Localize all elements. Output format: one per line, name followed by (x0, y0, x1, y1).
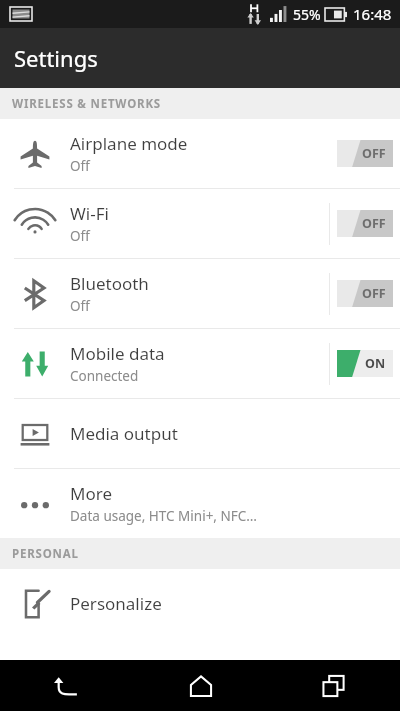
staticText: Personalize (70, 592, 162, 615)
staticText: WIRELESS & NETWORKS (12, 96, 161, 112)
button[interactable]: Back (0, 660, 134, 711)
button[interactable]: Home (134, 660, 267, 711)
staticText: 16:48 (353, 4, 392, 24)
button[interactable]: Bluetooth toggle (330, 259, 400, 328)
staticText: Media output (70, 422, 178, 445)
staticText: OFF (362, 285, 386, 302)
button[interactable]: Bluetooth (0, 259, 400, 328)
staticText: Data usage, HTC Mini+, NFC… (70, 507, 257, 525)
button[interactable]: Personalize (0, 569, 400, 638)
button[interactable]: Media output (0, 399, 400, 468)
button[interactable]: Airplane mode toggle (330, 119, 400, 188)
staticText: Settings (14, 43, 98, 73)
staticText: Mobile data (70, 342, 165, 365)
button[interactable]: Recents (267, 660, 400, 711)
button[interactable]: Mobile data toggle (330, 329, 400, 398)
staticText: Off (70, 297, 90, 315)
button[interactable]: Airplane mode (0, 119, 400, 188)
button[interactable]: Mobile data (0, 329, 400, 398)
staticText: Off (70, 227, 90, 245)
staticText: OFF (362, 145, 386, 162)
staticText: Off (70, 157, 90, 175)
button[interactable]: Wi-Fi (0, 189, 400, 258)
staticText: Wi-Fi (70, 202, 109, 225)
button[interactable]: More (0, 469, 400, 538)
staticText: More (70, 482, 112, 505)
staticText: 55% (293, 5, 321, 24)
staticText: Bluetooth (70, 272, 149, 295)
staticText: Airplane mode (70, 132, 188, 155)
staticText: Connected (70, 367, 139, 385)
button[interactable]: Wi-Fi toggle (330, 189, 400, 258)
staticText: PERSONAL (12, 546, 79, 562)
staticText: ON (365, 355, 386, 372)
staticText: OFF (362, 215, 386, 232)
